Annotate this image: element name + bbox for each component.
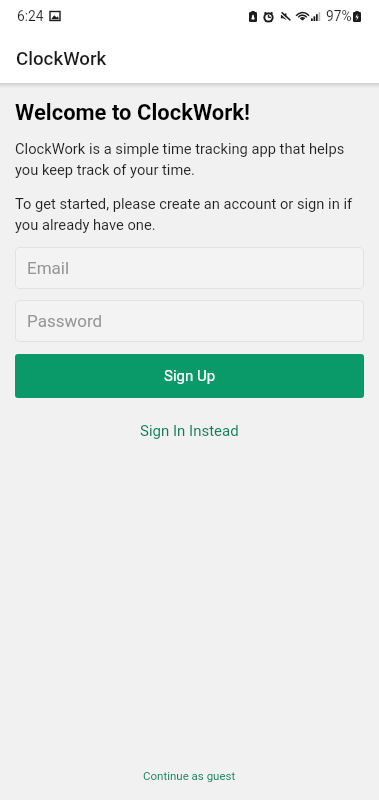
staticText: Welcome to ClockWork! <box>15 100 251 126</box>
other: Wi-Fi <box>296 11 309 22</box>
staticText: Sign In Instead <box>140 422 239 440</box>
staticText: ClockWork <box>16 48 107 70</box>
button[interactable]: Email <box>15 247 364 289</box>
staticText: Email <box>27 258 70 278</box>
button[interactable]: Password <box>15 300 364 342</box>
staticText: 97% <box>326 8 352 24</box>
staticText: Sign Up <box>164 367 216 385</box>
staticText: ClockWork is a simple time tracking app … <box>15 140 365 179</box>
other: Battery charging 97 percent <box>353 11 361 22</box>
other: Mobile signal <box>311 11 321 21</box>
other: Muted <box>280 11 291 22</box>
button[interactable]: Sign In Instead <box>0 418 379 444</box>
button[interactable]: Continue as guest <box>0 750 379 800</box>
other: Alarm set <box>263 11 274 22</box>
other: Battery saver <box>249 11 257 22</box>
staticText: Password <box>27 311 103 331</box>
staticText: 6:24 <box>17 8 44 24</box>
staticText: Continue as guest <box>143 769 236 782</box>
staticText: To get started, please create an account… <box>15 195 365 234</box>
button[interactable]: Sign Up <box>15 354 364 398</box>
other: Screenshot <box>50 11 60 21</box>
